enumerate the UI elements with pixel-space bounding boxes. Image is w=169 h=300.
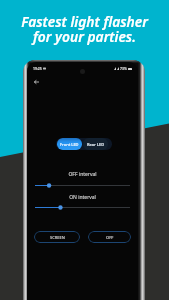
staticText: ON interval	[27, 194, 138, 201]
staticText: 19:25	[33, 66, 42, 71]
button[interactable]: Front LED	[57, 138, 82, 150]
staticText: SCREEN	[50, 235, 65, 240]
button[interactable]: OFF	[88, 231, 131, 243]
staticText: Rear LED	[87, 142, 105, 147]
staticText: for your parties.	[0, 27, 169, 46]
staticText: Front LED	[60, 142, 79, 147]
button[interactable]: Rear LED	[83, 138, 108, 150]
staticText: OFF interval	[27, 171, 138, 178]
staticText: 73%	[120, 66, 127, 71]
button[interactable]: Interval slider	[35, 204, 130, 211]
button[interactable]: SCREEN	[34, 231, 80, 243]
staticText: Fastest light flasher	[0, 12, 169, 31]
button[interactable]: Back	[29, 75, 43, 89]
staticText: OFF	[106, 235, 114, 240]
button[interactable]: Interval slider	[35, 182, 130, 189]
